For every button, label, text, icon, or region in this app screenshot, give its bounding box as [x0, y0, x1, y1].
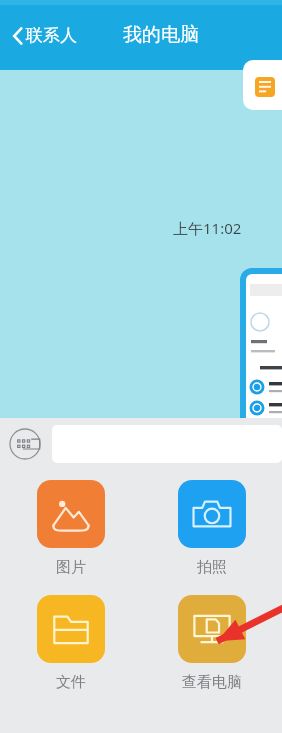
button[interactable]	[243, 60, 282, 110]
button[interactable]: 联系人	[8, 19, 81, 52]
button[interactable]: Files	[0, 595, 141, 692]
staticText: 上午11:02	[173, 218, 242, 238]
staticText: 联系人	[26, 25, 77, 46]
staticText: 拍照	[197, 558, 227, 577]
staticText: 文件	[56, 673, 86, 692]
staticText: 我的电脑	[123, 23, 199, 47]
button[interactable]: Keyboard	[6, 425, 44, 463]
staticText: 查看电脑	[182, 673, 242, 692]
staticText: 图片	[56, 558, 86, 577]
button[interactable]: Pictures	[0, 480, 141, 577]
button[interactable]: View computer	[141, 595, 282, 692]
button[interactable]	[240, 268, 282, 464]
button[interactable]: Camera	[141, 480, 282, 577]
